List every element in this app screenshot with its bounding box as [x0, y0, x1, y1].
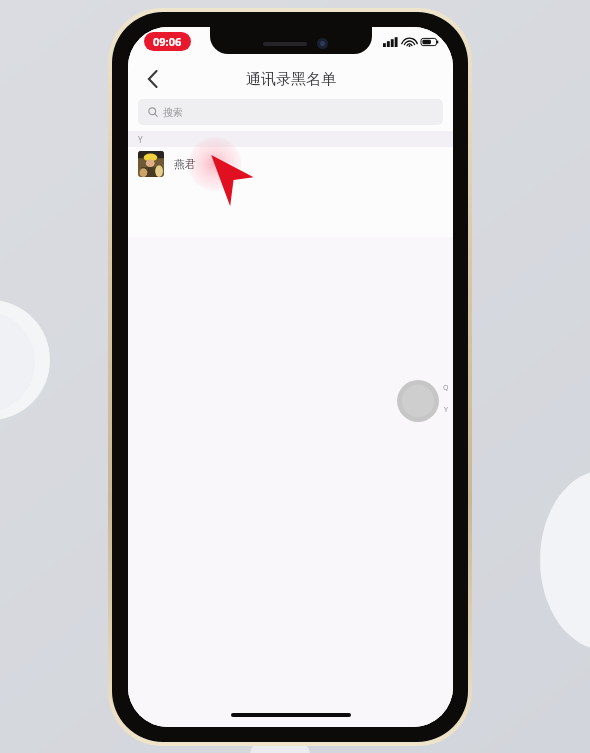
staticText: 搜索 — [163, 106, 183, 119]
button[interactable]: 搜索 — [138, 99, 443, 125]
staticText: 通讯录黑名单 — [246, 70, 336, 89]
button[interactable]: 燕君 — [128, 147, 453, 181]
button[interactable]: Back — [134, 61, 170, 97]
staticText: Q — [443, 383, 449, 393]
staticText: Y — [138, 134, 143, 145]
staticText: Y — [444, 405, 448, 415]
staticText: 09:06 — [153, 34, 182, 49]
staticText: 燕君 — [174, 157, 196, 171]
